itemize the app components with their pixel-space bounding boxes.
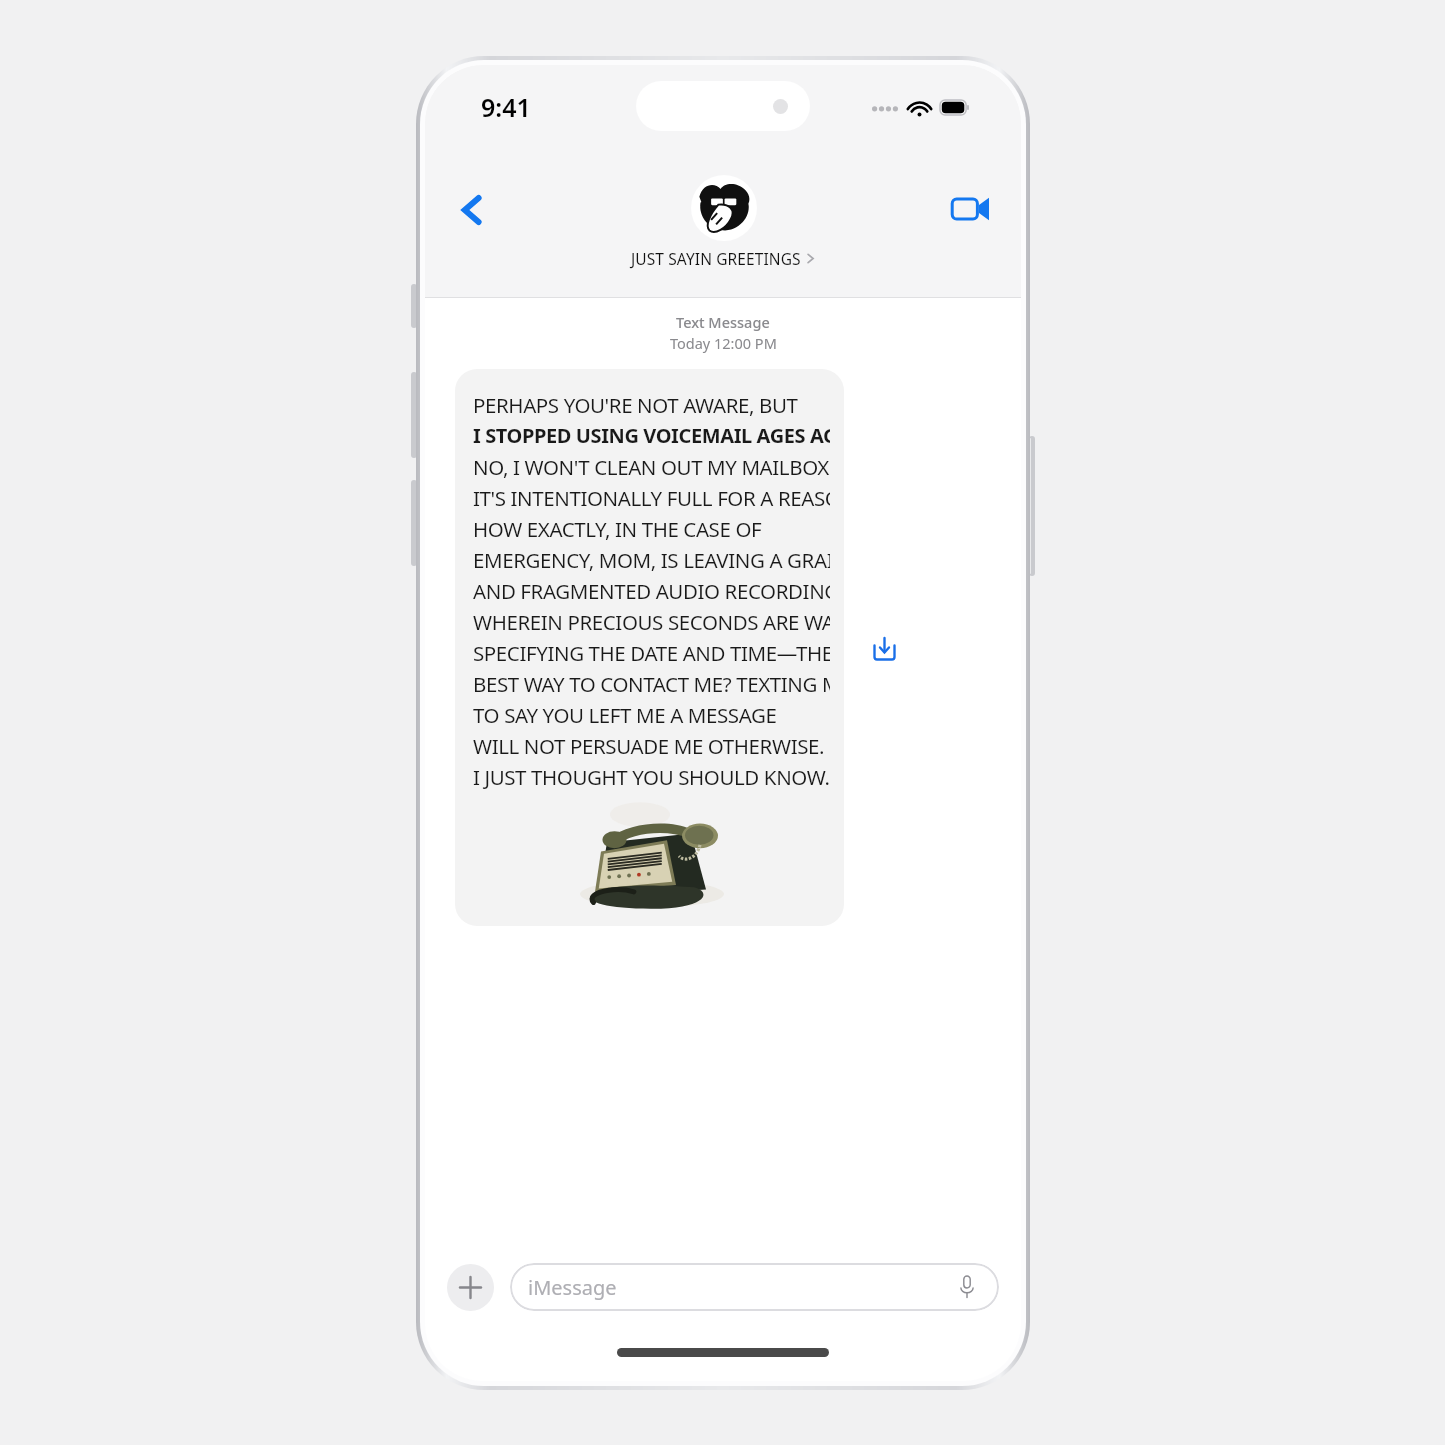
staticText: I STOPPED USING VOICEMAIL AGES AGO. [473, 422, 830, 449]
staticText: TO SAY YOU LEFT ME A MESSAGE [473, 701, 777, 729]
staticText: WHEREIN PRECIOUS SECONDS ARE WASTED [473, 608, 830, 636]
button[interactable]: JUST SAYIN GREETINGS [631, 175, 816, 269]
staticText: Today 12:00 PM [670, 333, 777, 353]
button[interactable]: FaceTime video call [943, 181, 999, 237]
button[interactable]: iMessage [510, 1263, 999, 1311]
button[interactable]: Back [445, 183, 499, 237]
staticText: iMessage [528, 1274, 617, 1301]
button[interactable]: Save image [864, 628, 904, 668]
staticText: AND FRAGMENTED AUDIO RECORDING— [473, 577, 830, 605]
staticText: SPECIFYING THE DATE AND TIME—THE [473, 639, 830, 667]
staticText: BEST WAY TO CONTACT ME? TEXTING ME [473, 670, 830, 698]
staticText: WILL NOT PERSUADE ME OTHERWISE. [473, 732, 825, 760]
button[interactable]: Add attachment [447, 1264, 494, 1311]
staticText: JUST SAYIN GREETINGS [631, 248, 801, 269]
staticText: NO, I WON'T CLEAN OUT MY MAILBOX. [473, 453, 830, 481]
button[interactable]: PERHAPS YOU'RE NOT AWARE, BUT [455, 369, 844, 926]
staticText: 9:41 [481, 90, 531, 124]
staticText: I JUST THOUGHT YOU SHOULD KNOW. [473, 763, 830, 791]
staticText: PERHAPS YOU'RE NOT AWARE, BUT [473, 391, 798, 419]
staticText: EMERGENCY, MOM, IS LEAVING A GRAINY [473, 546, 830, 574]
button[interactable]: Dictate message [953, 1273, 981, 1301]
staticText: IT'S INTENTIONALLY FULL FOR A REASON. [473, 484, 830, 512]
staticText: Text Message [676, 312, 770, 332]
staticText: HOW EXACTLY, IN THE CASE OF [473, 515, 762, 543]
